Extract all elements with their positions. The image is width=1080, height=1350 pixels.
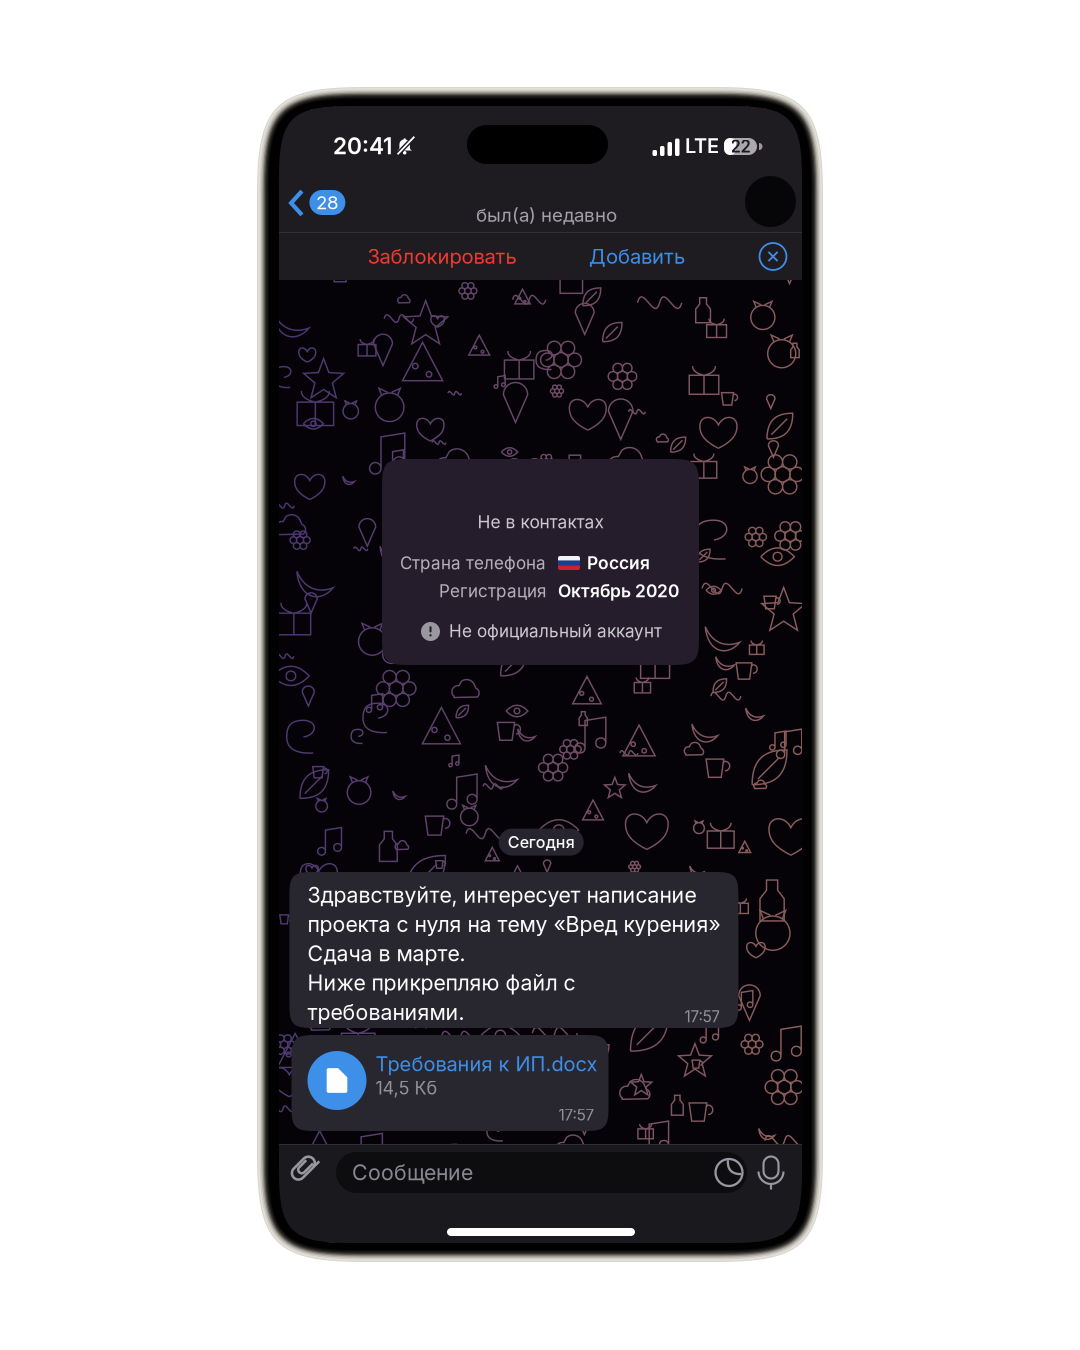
button[interactable]: Contact profile bbox=[745, 176, 796, 227]
staticText: Не официальный аккаунт bbox=[449, 621, 662, 641]
staticText: проекта с нуля на тему «Вред курения» bbox=[307, 911, 720, 937]
staticText: Ниже прикрепляю файл с bbox=[307, 970, 575, 996]
staticText: Октябрь 2020 bbox=[558, 580, 679, 601]
button[interactable]: Заблокировать bbox=[349, 233, 535, 280]
staticText: требованиями. bbox=[307, 999, 464, 1025]
staticText: Добавить bbox=[589, 244, 685, 269]
staticText: был(а) недавно bbox=[476, 204, 617, 226]
staticText: Сдача в марте. bbox=[307, 941, 465, 966]
button[interactable]: Добавить bbox=[572, 233, 702, 280]
button[interactable]: Stickers bbox=[712, 1155, 746, 1189]
button[interactable]: Dismiss bbox=[751, 233, 795, 280]
staticText: 22 bbox=[730, 136, 750, 157]
staticText: Не в контактах bbox=[477, 511, 603, 532]
staticText: 28 bbox=[316, 191, 339, 214]
staticText: 14,5 Кб bbox=[375, 1077, 437, 1099]
button[interactable]: Attach file bbox=[285, 1150, 329, 1194]
staticText: 20:41 bbox=[333, 132, 392, 160]
staticText: Заблокировать bbox=[367, 244, 516, 269]
staticText: Сообщение bbox=[352, 1160, 473, 1185]
staticText: 17:57 bbox=[558, 1106, 594, 1124]
staticText: Здравствуйте, интересует написание bbox=[307, 882, 696, 908]
staticText: Регистрация bbox=[439, 581, 546, 601]
button[interactable]: 28 bbox=[279, 172, 365, 222]
staticText: Требования к ИП.docx bbox=[375, 1052, 597, 1076]
staticText: Сегодня bbox=[508, 832, 575, 852]
staticText: 17:57 bbox=[684, 1007, 720, 1026]
staticText: LTE bbox=[685, 134, 719, 158]
staticText: Страна телефона bbox=[400, 553, 546, 573]
staticText: Россия bbox=[587, 552, 650, 573]
button[interactable]: Record voice message bbox=[750, 1151, 792, 1195]
